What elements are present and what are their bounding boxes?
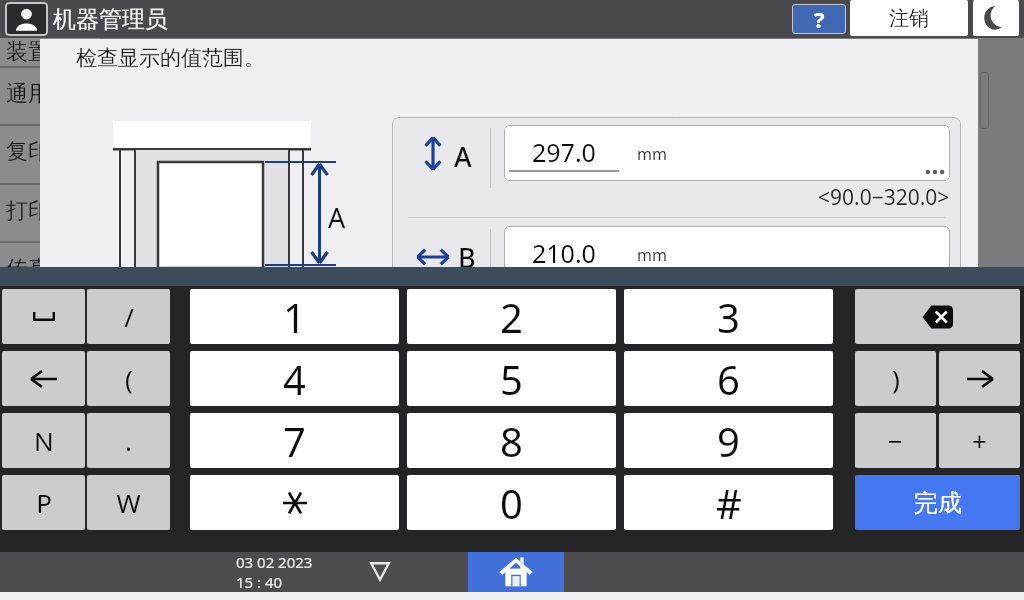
button[interactable]: User account (5, 2, 48, 36)
staticText: B (458, 239, 476, 276)
staticText: A (328, 199, 346, 236)
button[interactable]: Help (792, 4, 846, 34)
button[interactable]: 6 (624, 351, 833, 406)
staticText: 4 (283, 352, 306, 406)
button[interactable]: 9 (624, 413, 833, 468)
staticText: ? (814, 4, 825, 34)
button[interactable]: ) (855, 351, 936, 406)
staticText: <90.0−320.0> (818, 183, 950, 212)
button[interactable] (190, 475, 399, 530)
button[interactable]: ( (87, 351, 170, 406)
staticText: 210.0 (532, 236, 596, 270)
staticText: 复印 (6, 138, 50, 166)
staticText: 03 02 2023 (236, 552, 313, 572)
staticText: 完成 (914, 488, 962, 518)
button[interactable]: 复印 (0, 124, 100, 183)
staticText: # (716, 476, 742, 530)
staticText: ) (892, 361, 900, 396)
staticText: 297.0 (532, 135, 596, 169)
button[interactable]: Collapse panel (355, 556, 407, 588)
button[interactable]: Backspace (855, 289, 1020, 344)
staticText: ( (125, 361, 133, 396)
staticText: 15 : 40 (236, 572, 283, 592)
staticText: 9 (717, 414, 740, 468)
button[interactable]: 4 (190, 351, 399, 406)
staticText: / (124, 299, 134, 334)
staticText: W (116, 485, 141, 520)
staticText: − (888, 423, 903, 458)
button[interactable]: Sleep mode (973, 0, 1019, 36)
staticText: A (454, 138, 472, 175)
button[interactable]: W (87, 475, 170, 530)
staticText: 0 (500, 476, 523, 530)
button[interactable]: − (855, 413, 936, 468)
button[interactable]: 1 (190, 289, 399, 344)
button[interactable]: Move left (2, 351, 85, 406)
button[interactable]: Space (2, 289, 85, 344)
staticText: 1 (283, 290, 306, 344)
staticText: . (125, 423, 132, 458)
staticText: 注销 (889, 6, 929, 31)
button[interactable]: P (2, 475, 85, 530)
staticText: + (972, 423, 987, 458)
button[interactable]: 3 (624, 289, 833, 344)
staticText: 通用 (6, 80, 50, 108)
staticText: 传真 (6, 255, 50, 268)
button[interactable]: . (87, 413, 170, 468)
staticText: 8 (500, 414, 523, 468)
button[interactable]: Move right (939, 351, 1020, 406)
staticText: 6 (717, 352, 740, 406)
button[interactable]: 03 02 2023 (225, 552, 345, 592)
button[interactable]: 210.0 (504, 226, 950, 282)
button[interactable]: 装置 (0, 24, 100, 66)
staticText: 检查显示的值范围。 (76, 45, 265, 71)
staticText: P (36, 485, 52, 520)
button[interactable]: + (939, 413, 1020, 468)
button[interactable]: 传真 (0, 241, 100, 268)
button[interactable]: / (87, 289, 170, 344)
button[interactable]: 注销 (850, 0, 968, 36)
staticText: 5 (500, 352, 523, 406)
staticText: 7 (283, 414, 306, 468)
button[interactable]: 8 (407, 413, 616, 468)
button[interactable]: 通用 (0, 66, 100, 124)
button[interactable]: 2 (407, 289, 616, 344)
button[interactable]: 打印 (0, 183, 100, 241)
button[interactable]: N (2, 413, 85, 468)
staticText: 3 (717, 290, 740, 344)
staticText: 2 (500, 290, 523, 344)
button[interactable]: # (624, 475, 833, 530)
staticText: N (34, 423, 54, 458)
button[interactable]: 5 (407, 351, 616, 406)
button[interactable]: Home (468, 552, 564, 592)
staticText: 打印 (6, 197, 50, 225)
staticText: 机器管理员 (53, 5, 168, 34)
button[interactable]: 297.0 (504, 125, 950, 181)
staticText: mm (637, 244, 667, 266)
button[interactable]: 0 (407, 475, 616, 530)
button[interactable]: 完成 (855, 475, 1020, 530)
button[interactable]: 7 (190, 413, 399, 468)
staticText: mm (637, 143, 667, 165)
staticText: 装置 (6, 38, 50, 66)
